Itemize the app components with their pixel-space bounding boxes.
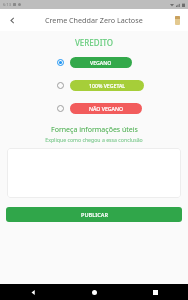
staticText: 100% VEGETAL bbox=[89, 82, 126, 89]
button[interactable]: 100% VEGETAL bbox=[70, 80, 144, 91]
staticText: VEGANO bbox=[90, 59, 112, 66]
button[interactable]: Product image bbox=[170, 13, 184, 27]
staticText: 6:13 bbox=[3, 2, 11, 7]
button[interactable]: Back bbox=[26, 285, 40, 299]
button[interactable]: VEGANO bbox=[0, 55, 188, 69]
button[interactable]: Notes input bbox=[7, 148, 181, 198]
staticText: VEREDITO bbox=[0, 37, 188, 48]
button[interactable]: PUBLICAR bbox=[6, 207, 182, 222]
button[interactable]: NÃO VEGANO bbox=[70, 103, 142, 114]
button[interactable]: Home bbox=[87, 285, 101, 299]
staticText: PUBLICAR bbox=[81, 211, 108, 219]
button[interactable]: NÃO VEGANO bbox=[0, 101, 188, 115]
staticText: Forneça informações úteis bbox=[51, 125, 138, 135]
button[interactable]: VEGANO bbox=[70, 57, 132, 68]
staticText: NÃO VEGANO bbox=[89, 105, 124, 112]
button[interactable]: Recent apps bbox=[148, 285, 162, 299]
button[interactable]: 100% VEGETAL bbox=[0, 78, 188, 92]
button[interactable]: Back bbox=[4, 12, 20, 28]
staticText: Explique como chegou a essa conclusão bbox=[45, 136, 143, 143]
staticText: Creme Cheddar Zero Lactose bbox=[45, 15, 143, 25]
